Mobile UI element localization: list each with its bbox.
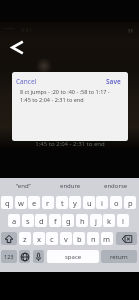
- button[interactable]: Change keyboard: [19, 250, 30, 263]
- button[interactable]: h: [76, 214, 88, 227]
- button[interactable]: e: [28, 196, 40, 209]
- staticText: •••••: [5, 26, 15, 33]
- staticText: 8 ct jumps - :20 to :40 - :58 to 1:17 -: [20, 88, 110, 95]
- staticText: i: [101, 198, 103, 208]
- staticText: y: [73, 198, 77, 208]
- button[interactable]: space: [47, 250, 99, 263]
- staticText: s: [26, 216, 30, 226]
- button[interactable]: b: [73, 232, 85, 245]
- button[interactable]: v: [60, 232, 72, 245]
- staticText: k: [107, 216, 112, 226]
- button[interactable]: Back: [4, 35, 29, 60]
- staticText: 123: [4, 253, 14, 260]
- button[interactable]: p: [124, 196, 136, 209]
- staticText: 1:45 to 2:04 - 2:31 to end: [20, 96, 84, 103]
- button[interactable]: j: [90, 214, 102, 227]
- button[interactable]: u: [83, 196, 95, 209]
- button[interactable]: Cancel: [15, 76, 38, 87]
- staticText: endorse: [104, 182, 128, 190]
- button[interactable]: endorse: [93, 178, 139, 194]
- staticText: 1:45 to 2:04 - 2:31 to end: [35, 140, 105, 148]
- button[interactable]: x: [33, 232, 45, 245]
- staticText: 9:41: [21, 26, 32, 33]
- button[interactable]: g: [62, 214, 74, 227]
- staticText: t: [61, 198, 64, 208]
- staticText: u: [87, 198, 92, 208]
- staticText: “end”: [16, 182, 31, 190]
- button[interactable]: o: [110, 196, 122, 209]
- button[interactable]: t: [56, 196, 68, 209]
- staticText: j: [95, 216, 97, 226]
- staticText: w: [18, 198, 24, 208]
- staticText: Cancel: [16, 77, 37, 86]
- button[interactable]: l: [117, 214, 129, 227]
- button[interactable]: n: [87, 232, 99, 245]
- staticText: space: [65, 253, 82, 261]
- staticText: x: [37, 234, 41, 244]
- staticText: endure: [60, 182, 81, 190]
- staticText: n: [91, 234, 96, 244]
- staticText: l: [122, 216, 124, 226]
- button[interactable]: f: [49, 214, 61, 227]
- button[interactable]: d: [35, 214, 47, 227]
- button[interactable]: Save: [105, 76, 122, 87]
- staticText: f: [54, 216, 57, 226]
- staticText: v: [64, 234, 68, 244]
- staticText: e: [32, 198, 37, 208]
- button[interactable]: Backspace: [116, 232, 137, 245]
- button[interactable]: r: [42, 196, 54, 209]
- button[interactable]: q: [1, 196, 13, 209]
- staticText: o: [114, 198, 119, 208]
- button[interactable]: w: [15, 196, 27, 209]
- staticText: Save: [106, 77, 121, 86]
- button[interactable]: return: [101, 250, 137, 263]
- staticText: return: [110, 253, 128, 261]
- button[interactable]: a: [8, 214, 20, 227]
- staticText: ▮▮: [128, 27, 134, 33]
- staticText: a: [12, 216, 17, 226]
- staticText: z: [23, 234, 27, 244]
- staticText: r: [46, 198, 50, 208]
- staticText: m: [103, 234, 111, 244]
- staticText: b: [77, 234, 82, 244]
- staticText: d: [39, 216, 44, 226]
- button[interactable]: endure: [47, 178, 93, 194]
- button[interactable]: z: [19, 232, 31, 245]
- staticText: q: [5, 198, 10, 208]
- button[interactable]: y: [69, 196, 81, 209]
- staticText: p: [128, 198, 133, 208]
- button[interactable]: m: [101, 232, 113, 245]
- button[interactable]: k: [103, 214, 115, 227]
- button[interactable]: 123: [1, 250, 17, 263]
- staticText: g: [66, 216, 71, 226]
- button[interactable]: Dictate: [33, 250, 44, 263]
- button[interactable]: i: [96, 196, 108, 209]
- button[interactable]: s: [22, 214, 34, 227]
- button[interactable]: “end”: [0, 178, 47, 194]
- button[interactable]: shift: [1, 232, 17, 245]
- staticText: h: [80, 216, 85, 226]
- staticText: c: [50, 234, 54, 244]
- button[interactable]: c: [46, 232, 58, 245]
